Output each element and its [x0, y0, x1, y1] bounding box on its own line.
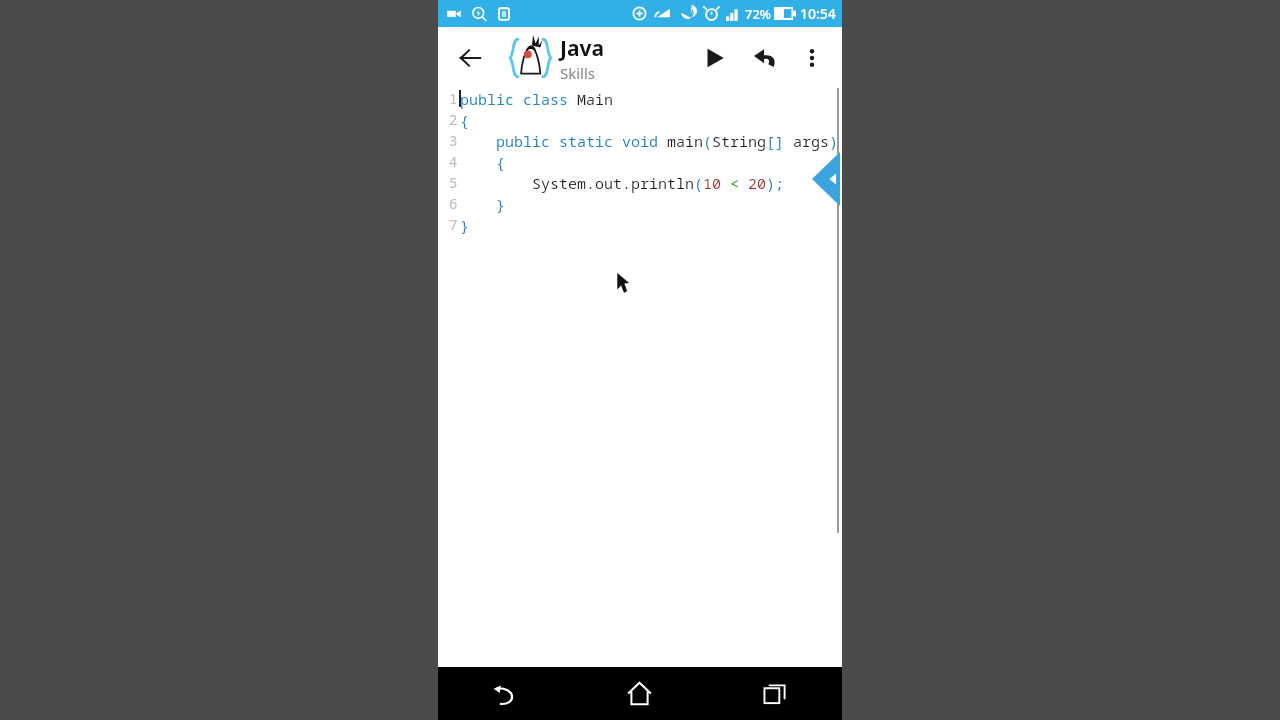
staticText: public class Main — [460, 89, 614, 109]
staticText: { — [460, 152, 506, 172]
staticText: } — [460, 215, 470, 235]
staticText: } — [460, 194, 506, 214]
button[interactable]: More options — [790, 36, 834, 80]
button[interactable]: Open panel — [812, 152, 840, 206]
staticText: public static void main(String[] args) — [460, 131, 839, 151]
button[interactable]: Undo — [742, 35, 788, 81]
staticText: Skills — [560, 63, 596, 83]
staticText: 5 — [449, 173, 458, 192]
button[interactable]: Recent apps — [707, 667, 842, 720]
staticText: System.out.println(10 < 20); — [460, 173, 785, 193]
button[interactable]: Back — [446, 34, 494, 82]
staticText: 72% — [745, 5, 771, 23]
staticText: 4 — [449, 152, 458, 171]
staticText: 10:54 — [800, 4, 836, 23]
button[interactable]: Back — [438, 667, 572, 720]
button[interactable]: Java — [506, 32, 605, 84]
staticText: 7 — [449, 215, 458, 234]
staticText: 3 — [449, 131, 458, 150]
staticText: { — [460, 110, 470, 130]
staticText: 2 — [449, 110, 458, 129]
staticText: 1 — [449, 89, 458, 108]
button[interactable]: Home — [572, 667, 707, 720]
staticText: 6 — [449, 194, 458, 213]
button[interactable]: Run — [692, 35, 738, 81]
staticText: Java — [560, 34, 605, 63]
